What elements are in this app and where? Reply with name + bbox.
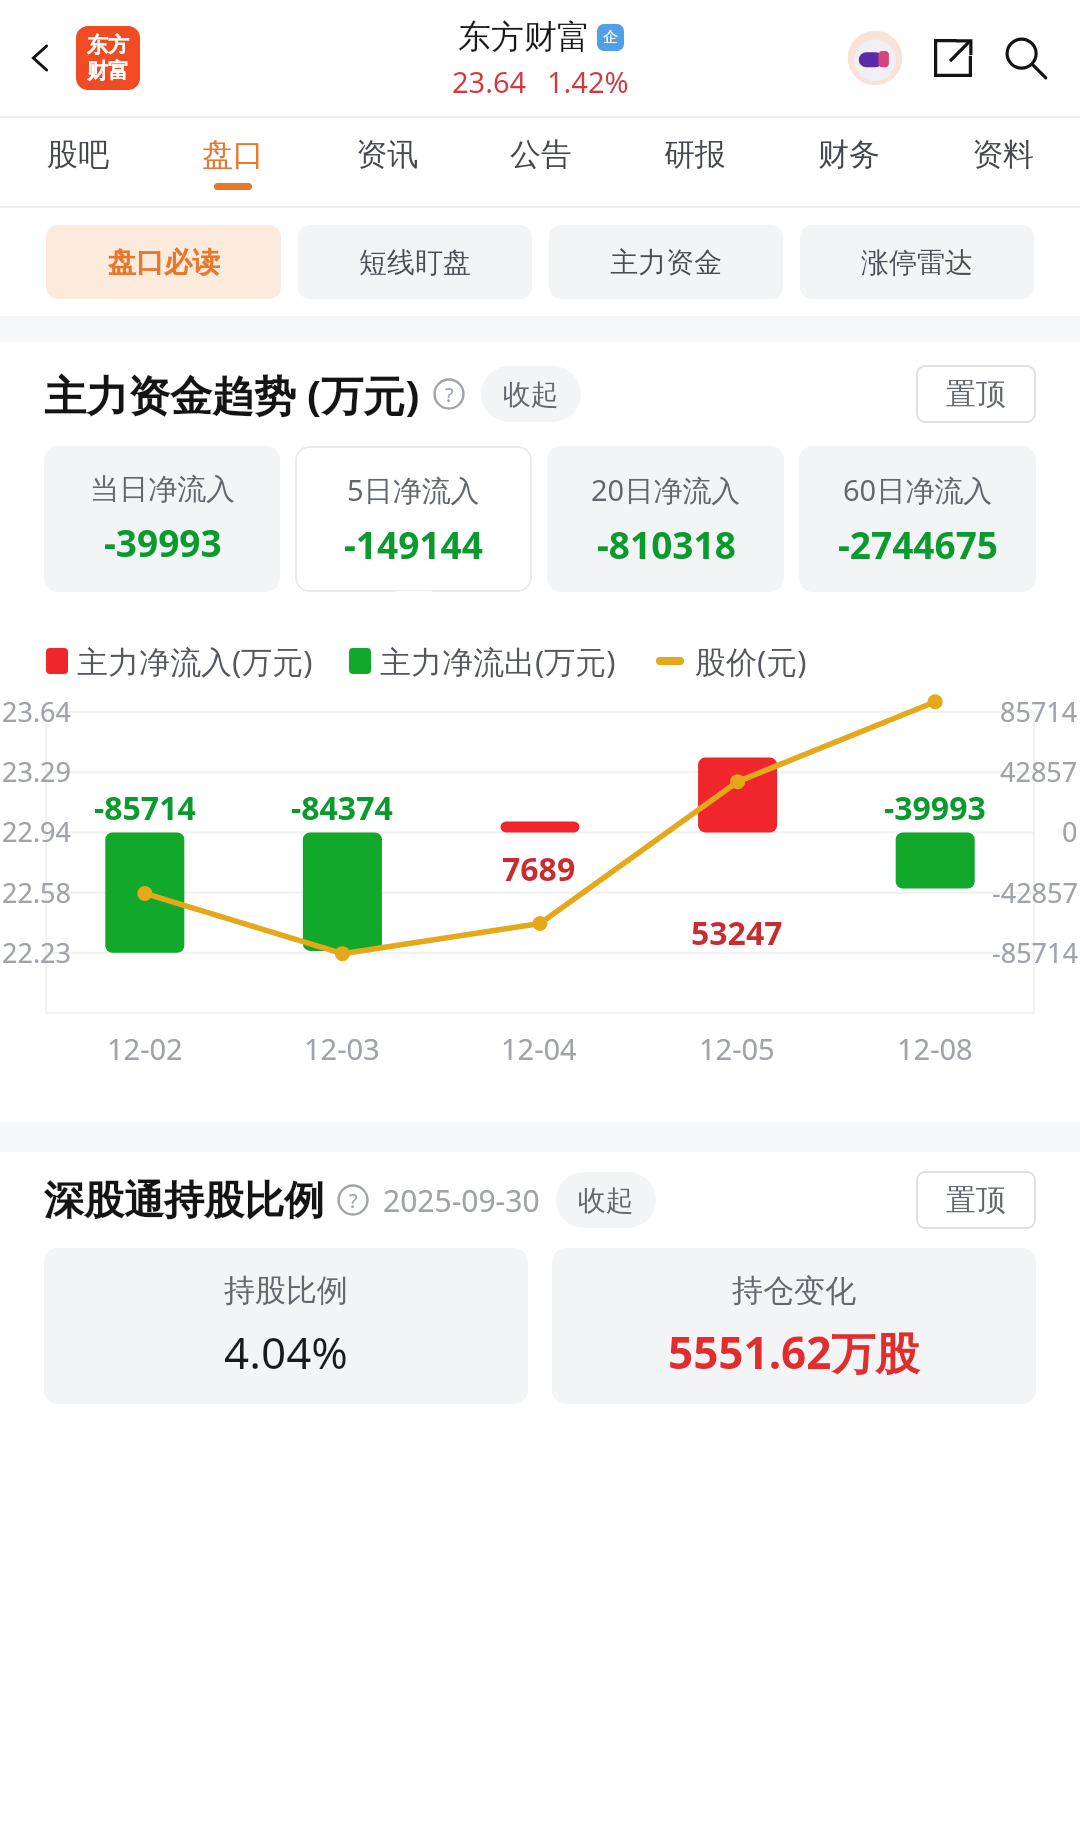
staticText: 东方财富: [458, 16, 590, 58]
staticText: -39993: [104, 517, 222, 567]
button[interactable]: 收起: [578, 1172, 634, 1228]
staticText: 4.04%: [224, 1322, 348, 1382]
staticText: 42857: [1000, 753, 1078, 790]
button[interactable]: AI assistant: [842, 25, 908, 91]
staticText: 企: [603, 28, 618, 47]
staticText: 主力净流入(万元): [77, 640, 313, 682]
staticText: 主力资金: [610, 245, 722, 280]
button[interactable]: 持仓变化: [552, 1248, 1036, 1404]
staticText: -149144: [344, 519, 483, 569]
staticText: 20日净流入: [591, 470, 741, 510]
button[interactable]: 5日净流入: [295, 446, 532, 592]
staticText: 东方: [87, 32, 129, 58]
staticText: 资料: [972, 135, 1034, 174]
staticText: 主力净流出(万元): [380, 640, 616, 682]
staticText: 财务: [818, 135, 880, 174]
staticText: 60日净流入: [843, 470, 993, 510]
staticText: -84374: [291, 786, 393, 830]
staticText: ?: [445, 381, 454, 408]
staticText: 收起: [578, 1183, 634, 1218]
button[interactable]: 资讯: [310, 118, 464, 206]
staticText: 涨停雷达: [861, 245, 973, 280]
staticText: 置顶: [946, 1181, 1006, 1219]
button[interactable]: Share: [920, 25, 986, 91]
staticText: 盘口: [202, 135, 264, 174]
button[interactable]: East Money: [76, 26, 140, 90]
button[interactable]: 涨停雷达: [800, 225, 1034, 299]
staticText: 22.23: [2, 934, 72, 971]
staticText: 23.64: [452, 62, 527, 101]
staticText: 2025-09-30: [383, 1180, 540, 1221]
staticText: -2744675: [838, 519, 998, 569]
staticText: 7689: [502, 847, 576, 891]
button[interactable]: 当日净流入: [44, 446, 280, 592]
button[interactable]: 研报: [618, 118, 772, 206]
button[interactable]: 短线盯盘: [298, 225, 532, 299]
staticText: 深股通持股比例: [44, 1175, 324, 1225]
button[interactable]: 置顶: [916, 365, 1036, 423]
staticText: -42857: [992, 874, 1078, 911]
staticText: 12-08: [897, 1029, 973, 1068]
staticText: 12-04: [501, 1029, 577, 1068]
button[interactable]: 公告: [464, 118, 618, 206]
staticText: 持仓变化: [732, 1271, 856, 1310]
staticText: 23.64: [2, 693, 72, 730]
staticText: 财富: [87, 58, 129, 84]
staticText: 12-05: [699, 1029, 775, 1068]
button[interactable]: 股吧: [0, 118, 155, 206]
button[interactable]: 60日净流入: [799, 446, 1036, 592]
button[interactable]: 资料: [926, 118, 1080, 206]
button[interactable]: 财务: [772, 118, 926, 206]
staticText: 22.94: [2, 813, 72, 850]
staticText: 85714: [1000, 693, 1078, 730]
staticText: ?: [349, 1187, 358, 1214]
staticText: 0: [1062, 813, 1078, 850]
staticText: 股吧: [47, 135, 109, 174]
button[interactable]: 盘口: [155, 118, 310, 206]
staticText: 当日净流入: [90, 471, 235, 508]
staticText: 收起: [503, 377, 559, 412]
staticText: 研报: [664, 135, 726, 174]
staticText: 盘口必读: [108, 245, 220, 280]
button[interactable]: 主力资金: [549, 225, 783, 299]
button[interactable]: Back: [8, 26, 72, 90]
button[interactable]: Help: [433, 378, 465, 410]
staticText: 12-03: [304, 1029, 380, 1068]
staticText: -810318: [597, 519, 736, 569]
staticText: 公告: [510, 135, 572, 174]
staticText: 资讯: [356, 135, 418, 174]
staticText: 主力资金趋势 (万元): [44, 366, 420, 423]
staticText: 5日净流入: [347, 470, 480, 510]
staticText: -85714: [992, 934, 1078, 971]
staticText: 股价(元): [695, 640, 807, 682]
staticText: 持股比例: [224, 1271, 348, 1310]
button[interactable]: 置顶: [916, 1171, 1036, 1229]
staticText: 置顶: [946, 375, 1006, 413]
button[interactable]: 盘口必读: [46, 225, 281, 299]
staticText: 短线盯盘: [359, 245, 471, 280]
staticText: 22.58: [2, 874, 72, 911]
staticText: 5551.62万股: [668, 1322, 920, 1382]
button[interactable]: 20日净流入: [547, 446, 784, 592]
button[interactable]: Search: [992, 24, 1060, 92]
button[interactable]: 持股比例: [44, 1248, 528, 1404]
staticText: 23.29: [2, 753, 72, 790]
staticText: 1.42%: [547, 62, 629, 101]
button[interactable]: Help: [337, 1184, 369, 1216]
staticText: -85714: [94, 786, 196, 830]
staticText: 12-02: [107, 1029, 183, 1068]
button[interactable]: 收起: [503, 366, 559, 422]
staticText: 53247: [691, 911, 783, 955]
staticText: -39993: [884, 786, 986, 830]
